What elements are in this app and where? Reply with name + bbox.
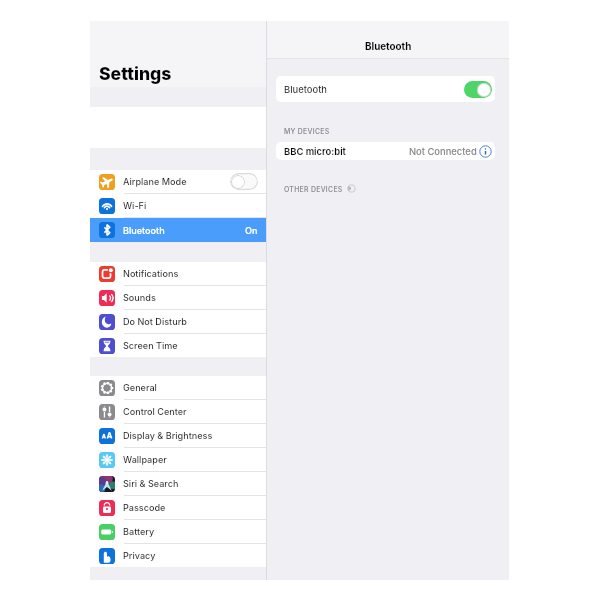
button[interactable]: General <box>90 376 266 399</box>
button[interactable]: Wi-Fi <box>90 194 266 217</box>
button[interactable]: Notifications <box>90 262 266 285</box>
button[interactable]: Turn on <box>230 173 258 190</box>
button[interactable]: Display & Brightness <box>90 424 266 447</box>
staticText: Wi-Fi <box>123 200 147 211</box>
staticText: On <box>245 225 258 236</box>
staticText: Airplane Mode <box>123 176 187 187</box>
staticText: Wallpaper <box>123 454 167 465</box>
button[interactable]: Sounds <box>90 286 266 309</box>
button[interactable]: Wallpaper <box>90 448 266 471</box>
staticText: MY DEVICES <box>284 127 330 135</box>
button[interactable]: Control Center <box>90 400 266 423</box>
staticText: Battery <box>123 526 155 537</box>
staticText: Privacy <box>123 550 156 561</box>
staticText: Notifications <box>123 268 179 279</box>
staticText: Control Center <box>123 406 187 417</box>
button[interactable]: Bluetooth <box>90 218 266 242</box>
button[interactable]: BBC micro:bit <box>276 142 495 160</box>
staticText: Display & Brightness <box>123 430 213 441</box>
button[interactable]: Airplane Mode <box>90 170 266 193</box>
staticText: OTHER DEVICES <box>284 185 343 193</box>
button[interactable]: Siri & Search <box>90 472 266 495</box>
staticText: Passcode <box>123 502 166 513</box>
staticText: General <box>123 382 157 393</box>
button[interactable]: Privacy <box>90 544 266 567</box>
button[interactable]: Turn off <box>464 81 492 98</box>
staticText: Sounds <box>123 292 156 303</box>
button[interactable]: Bluetooth <box>276 76 495 102</box>
staticText: Do Not Disturb <box>123 316 187 327</box>
button[interactable]: Battery <box>90 520 266 543</box>
staticText: Bluetooth <box>123 225 165 236</box>
staticText: Settings <box>99 63 172 84</box>
staticText: Bluetooth <box>365 41 412 53</box>
button[interactable]: Screen Time <box>90 334 266 357</box>
button[interactable]: Do Not Disturb <box>90 310 266 333</box>
staticText: Not Connected <box>409 146 477 157</box>
button[interactable]: Device info <box>479 145 492 158</box>
staticText: Bluetooth <box>284 84 328 95</box>
staticText: Screen Time <box>123 340 178 351</box>
button[interactable]: Passcode <box>90 496 266 519</box>
staticText: Siri & Search <box>123 478 179 489</box>
staticText: BBC micro:bit <box>284 146 346 157</box>
